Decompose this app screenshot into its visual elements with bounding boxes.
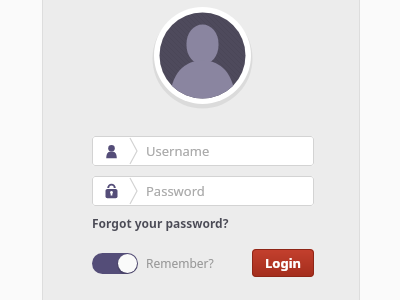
button[interactable]: Login	[252, 249, 314, 277]
staticText: Password	[146, 182, 205, 200]
staticText: Username	[146, 142, 210, 160]
staticText: Remember?	[146, 255, 214, 271]
button[interactable]: Password	[92, 176, 314, 206]
button[interactable]: Remember me toggle	[92, 253, 138, 274]
button[interactable]: Username	[92, 136, 314, 166]
button[interactable]: Forgot your password?	[92, 215, 229, 231]
staticText: Login	[265, 254, 301, 272]
staticText: Forgot your password?	[92, 215, 229, 231]
